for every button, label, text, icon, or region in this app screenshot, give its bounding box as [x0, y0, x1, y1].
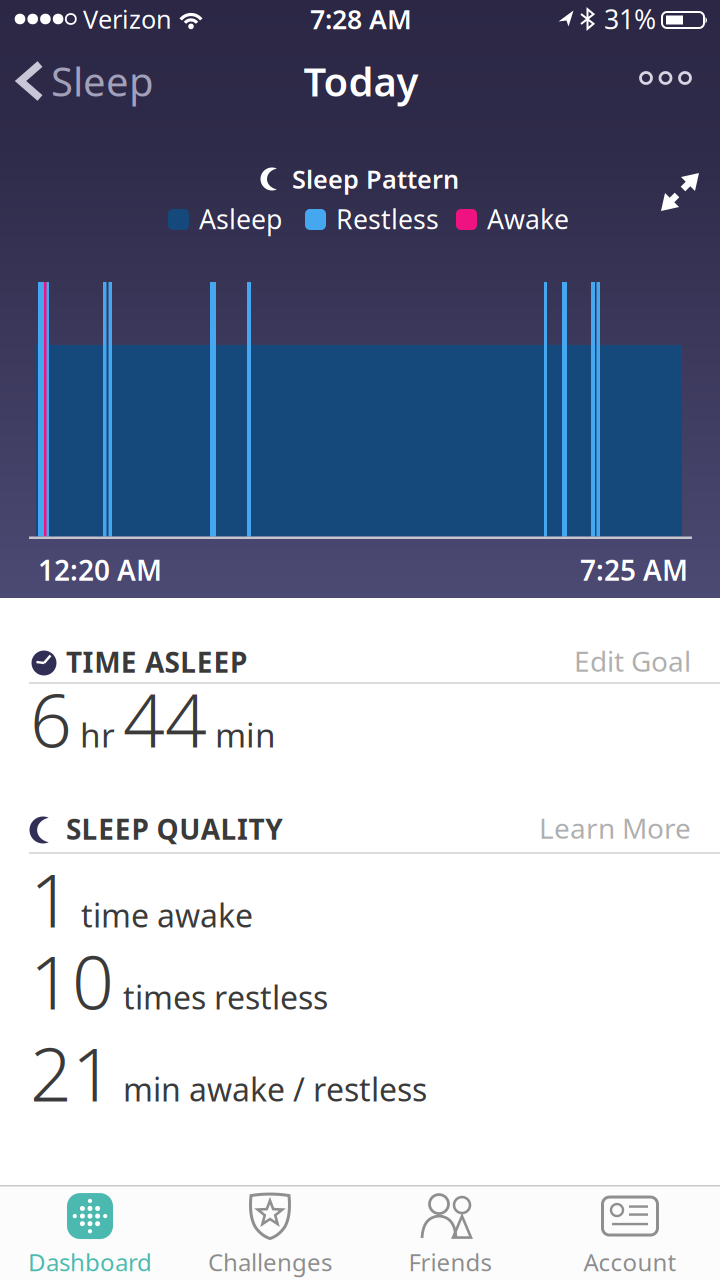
staticText: Account: [583, 1246, 676, 1278]
staticText: Friends: [408, 1246, 491, 1278]
button[interactable]: Account: [545, 1191, 715, 1279]
staticText: 31%: [604, 1, 656, 37]
button[interactable]: Expand: [660, 172, 700, 212]
staticText: Learn More: [539, 809, 691, 847]
staticText: 7:25 AM: [580, 551, 688, 589]
staticText: 21: [30, 1024, 114, 1122]
staticText: min: [215, 712, 276, 757]
button[interactable]: Challenges: [185, 1191, 355, 1279]
staticText: TIME ASLEEP: [66, 643, 247, 681]
staticText: 7:28 AM: [310, 1, 412, 37]
button[interactable]: Dashboard: [5, 1191, 175, 1279]
staticText: Today: [303, 54, 418, 107]
staticText: Dashboard: [28, 1246, 152, 1278]
staticText: Restless: [336, 201, 439, 237]
button[interactable]: More: [639, 68, 691, 88]
staticText: 6: [30, 670, 72, 768]
staticText: times restless: [123, 976, 328, 1018]
button[interactable]: Edit Goal: [491, 642, 691, 680]
staticText: Sleep: [51, 54, 154, 107]
staticText: min awake / restless: [123, 1068, 427, 1110]
staticText: 10: [30, 932, 114, 1030]
staticText: Sleep Pattern: [292, 162, 459, 196]
staticText: 12:20 AM: [38, 551, 162, 589]
staticText: time awake: [81, 894, 253, 936]
staticText: Challenges: [208, 1246, 332, 1278]
staticText: hr: [80, 712, 115, 757]
staticText: Edit Goal: [574, 642, 691, 680]
staticText: 44: [123, 670, 207, 768]
staticText: Awake: [487, 201, 569, 237]
button[interactable]: Sleep: [15, 60, 155, 102]
button[interactable]: Learn More: [491, 809, 691, 847]
staticText: 1: [30, 850, 72, 948]
staticText: Verizon: [83, 2, 172, 36]
staticText: SLEEP QUALITY: [66, 810, 283, 848]
staticText: Asleep: [199, 201, 282, 237]
button[interactable]: Friends: [365, 1191, 535, 1279]
